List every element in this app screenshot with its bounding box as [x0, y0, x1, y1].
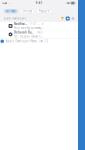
button[interactable]: Apple Developer News · Jan 12 — [0, 39, 78, 44]
staticText: · 9:41 AM — [28, 22, 41, 26]
button[interactable]: Flagged — [37, 9, 52, 13]
button[interactable]: Select — [66, 16, 70, 20]
staticText: Flagged — [39, 9, 50, 13]
staticText: Your weekly summary is rea — [14, 26, 44, 30]
button[interactable]: Deborah Ryan — [0, 30, 78, 38]
staticText: Apple Developer News · Jan 12 — [6, 39, 49, 43]
staticText: Deborah Ryan — [14, 31, 34, 34]
staticText: All Mail — [6, 9, 16, 13]
staticText: Notification C — [14, 22, 27, 26]
button[interactable]: Filter — [59, 17, 66, 20]
staticText: 9:41 — [36, 1, 43, 5]
staticText: Re: Design review notes — [14, 35, 44, 38]
staticText: · Mon — [35, 31, 43, 34]
button[interactable]: All Mail — [4, 9, 18, 13]
button[interactable]: Unread — [20, 9, 34, 13]
staticText: Carrier — [7, 2, 13, 4]
button[interactable]: Notification C — [0, 22, 78, 30]
staticText: Search mailboxes — [3, 17, 25, 20]
button[interactable]: More — [70, 17, 74, 20]
staticText: Unread — [22, 9, 32, 13]
